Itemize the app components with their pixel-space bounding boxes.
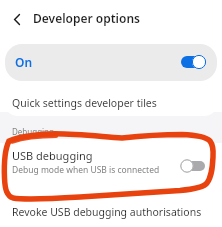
staticText: USB debugging [12,148,93,163]
staticText: Debug mode when USB is connected [12,164,160,176]
staticText: Developer options [33,10,140,26]
staticText: Debugging [12,126,54,137]
button[interactable] [181,56,206,68]
button[interactable] [4,196,218,227]
staticText: Revoke USB debugging authorisations [12,205,202,219]
button[interactable] [4,82,218,116]
button[interactable] [4,140,218,182]
button[interactable] [182,161,205,171]
staticText: Quick settings developer tiles [12,96,157,110]
button[interactable] [13,14,22,25]
staticText: On [15,54,33,70]
button[interactable] [5,44,217,81]
